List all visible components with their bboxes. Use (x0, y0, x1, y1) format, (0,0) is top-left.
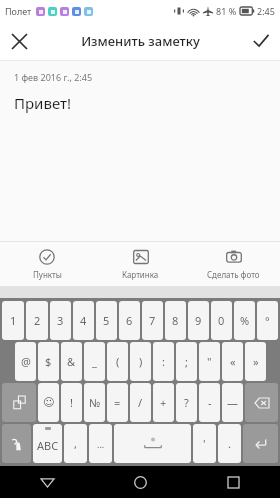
staticText: Полет (5, 5, 32, 17)
staticText: 3 (57, 313, 64, 328)
staticText: 2 (34, 313, 41, 328)
button[interactable]: _ (84, 342, 105, 381)
staticText: . (228, 436, 231, 451)
button[interactable]: « (222, 342, 243, 381)
button[interactable]: 9 (188, 301, 209, 340)
staticText: & (67, 354, 76, 369)
staticText: ? (184, 395, 189, 410)
button[interactable]: 2 (26, 301, 48, 340)
button[interactable]: Сделать фото (187, 242, 280, 286)
button[interactable]: Картинка (94, 242, 187, 286)
button[interactable]: @ (15, 342, 36, 381)
button[interactable]: Back (0, 466, 94, 498)
staticText: 9 (195, 313, 202, 328)
button[interactable]: Switch page (2, 383, 36, 422)
staticText: 0 (218, 313, 225, 328)
button[interactable]: Backspace (245, 383, 278, 422)
staticText: ABC (37, 438, 59, 453)
staticText: « (230, 354, 236, 369)
staticText: 6 (126, 313, 133, 328)
button[interactable]: ( (107, 342, 128, 381)
button[interactable]: 4 (73, 301, 94, 340)
button[interactable]: 6 (119, 301, 140, 340)
staticText: " (207, 354, 212, 369)
staticText: + (160, 395, 167, 410)
staticText: 2:45 (257, 5, 275, 17)
button[interactable]: " (199, 342, 220, 381)
button[interactable]: ) (130, 342, 151, 381)
button[interactable]: . (218, 424, 241, 463)
staticText: : (162, 354, 165, 369)
staticText: ( (116, 354, 120, 369)
staticText: Картинка (122, 269, 159, 280)
staticText: % (240, 313, 250, 328)
button[interactable]: Recents (187, 466, 280, 498)
staticText: Изменить заметку (81, 32, 200, 50)
button[interactable]: Space (114, 424, 191, 463)
button[interactable]: ! (61, 383, 82, 422)
button[interactable]: Close (0, 22, 38, 60)
button[interactable]: : (153, 342, 174, 381)
button[interactable]: , (64, 424, 87, 463)
button[interactable]: $ (38, 342, 59, 381)
staticText: ° (265, 313, 270, 328)
staticText: Пункты (33, 269, 62, 280)
button[interactable]: Save (242, 22, 280, 60)
button[interactable]: ABC (33, 424, 62, 463)
staticText: 81 % (216, 5, 237, 17)
button[interactable]: № (84, 383, 105, 422)
button[interactable]: + (153, 383, 174, 422)
staticText: ! (70, 395, 73, 410)
button[interactable]: Handwriting (2, 424, 31, 463)
staticText: Привет! (14, 93, 72, 113)
staticText: 8 (172, 313, 179, 328)
staticText: ; (185, 354, 188, 369)
staticText: ) (139, 354, 143, 369)
button[interactable]: = (107, 383, 128, 422)
staticText: @ (21, 354, 31, 369)
button[interactable]: » (245, 342, 266, 381)
button[interactable]: % (234, 301, 255, 340)
staticText: _ (92, 354, 97, 369)
staticText: 7 (149, 313, 156, 328)
button[interactable]: Пункты (0, 242, 94, 286)
button[interactable]: — (222, 383, 243, 422)
staticText: = (114, 395, 121, 410)
button[interactable]: 5 (96, 301, 117, 340)
button[interactable]: Enter (243, 424, 278, 463)
button[interactable]: ☺ (38, 383, 59, 422)
button[interactable]: ° (257, 301, 278, 340)
button[interactable]: ... (89, 424, 112, 463)
button[interactable]: 8 (165, 301, 186, 340)
button[interactable]: 1 (2, 301, 24, 340)
button[interactable]: ? (176, 383, 197, 422)
button[interactable]: ; (176, 342, 197, 381)
staticText: ' (203, 436, 206, 451)
staticText: - (208, 395, 212, 410)
button[interactable]: Home (94, 466, 187, 498)
button[interactable]: ' (193, 424, 216, 463)
staticText: 1 фев 2016 г., 2:45 (14, 71, 93, 83)
staticText: 4 (80, 313, 87, 328)
staticText: Сделать фото (207, 269, 260, 280)
button[interactable]: & (61, 342, 82, 381)
staticText: $ (45, 354, 52, 369)
staticText: » (253, 354, 259, 369)
button[interactable]: - (199, 383, 220, 422)
button[interactable]: 7 (142, 301, 163, 340)
staticText: 1 (10, 313, 17, 328)
button[interactable]: 3 (50, 301, 71, 340)
staticText: 5 (103, 313, 110, 328)
button[interactable]: 0 (211, 301, 232, 340)
staticText: ☺ (43, 396, 55, 409)
staticText: — (227, 395, 238, 410)
staticText: ... (97, 438, 105, 450)
button[interactable]: / (130, 383, 151, 422)
staticText: / (138, 395, 143, 410)
staticText: , (74, 436, 77, 451)
staticText: № (89, 395, 101, 410)
